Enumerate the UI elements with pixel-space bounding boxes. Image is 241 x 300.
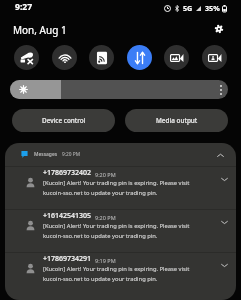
button[interactable]: Media output [125,109,228,132]
staticText: +17869734291 [43,254,92,264]
staticText: Mon, Aug 1 [13,23,67,37]
staticText: 9:19 PM [95,257,116,264]
staticText: Messages [34,151,58,158]
button[interactable]: +17869732402 [5,167,236,209]
staticText: 5G [183,3,193,13]
staticText: [Kucoin] Alert! Your trading pin is expi… [43,265,205,282]
button[interactable]: Settings [210,21,228,39]
staticText: Device control [42,116,86,125]
button[interactable]: Wi-Fi [52,45,77,70]
button[interactable]: Data saver off [14,45,39,70]
button[interactable]: +17869734291 [5,253,236,300]
button[interactable]: Video call [202,45,227,70]
button[interactable]: Brightness [10,80,228,99]
button[interactable]: Expand [218,259,230,271]
staticText: +16142541305 [43,211,92,221]
staticText: 35% [205,3,220,13]
button[interactable]: Device control [12,109,115,132]
staticText: 9:20 PM [95,171,116,178]
button[interactable]: Expand [218,173,230,185]
button[interactable]: +16142541305 [5,210,236,252]
button[interactable]: Mobile data [127,45,152,70]
staticText: [Kucoin] Alert! Your trading pin is expi… [43,179,205,196]
staticText: 9:27 [15,1,33,13]
button[interactable]: Collapse [214,149,226,161]
button[interactable]: Screen recorder [164,45,189,70]
button[interactable]: Expand [218,216,230,228]
button[interactable]: Messages [5,143,236,166]
staticText: Media output [156,116,198,125]
button[interactable]: Nearby share [89,45,114,70]
staticText: +17869732402 [43,168,92,178]
staticText: 9:20 PM [95,214,116,221]
staticText: 9:20 PM [62,151,81,158]
staticText: [Kucoin] Alert! Your trading pin is expi… [43,222,205,239]
